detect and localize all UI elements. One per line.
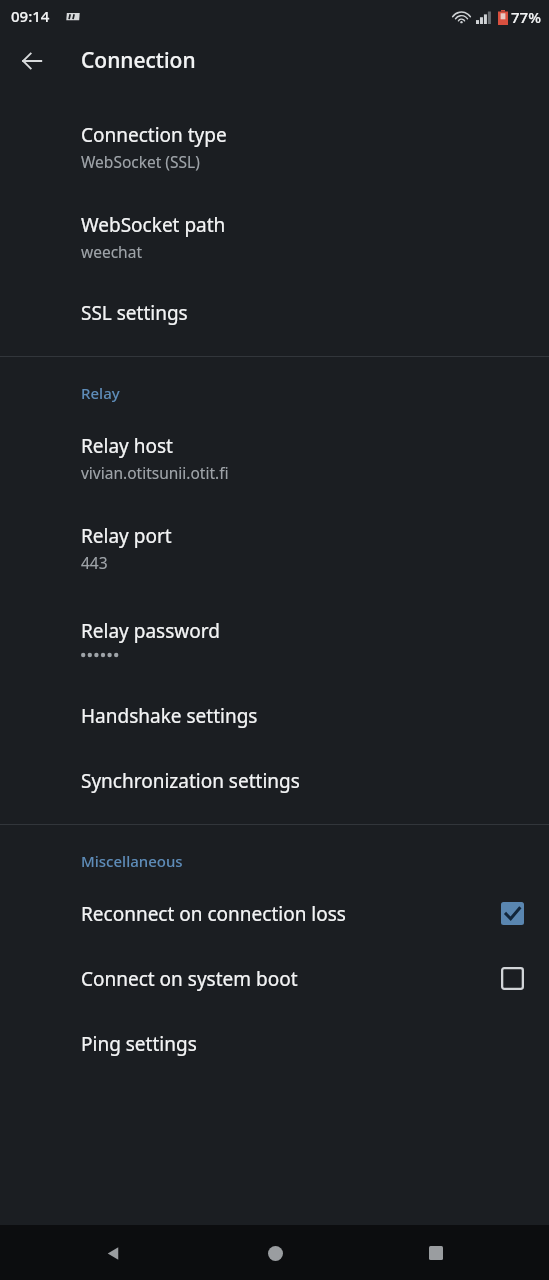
button[interactable]: WebSocket path (0, 192, 549, 282)
staticText: Connection type (81, 122, 227, 148)
staticText: Connect on system boot (81, 966, 298, 992)
staticText: Handshake settings (81, 703, 258, 729)
staticText: Relay host (81, 433, 173, 459)
button[interactable]: Reconnect on connection loss (0, 881, 549, 946)
staticText: 09:14 (11, 6, 50, 26)
staticText: WebSocket (SSL) (81, 151, 200, 172)
button[interactable]: Relay password (0, 593, 549, 683)
button[interactable]: Recent apps (412, 1229, 460, 1277)
button[interactable]: SSL settings (0, 282, 549, 344)
button[interactable]: Connection type (0, 102, 549, 192)
button[interactable]: Ping settings (0, 1011, 549, 1076)
staticText: 443 (81, 552, 108, 573)
staticText: vivian.otitsunii.otit.fi (81, 462, 229, 483)
button[interactable]: Relay port (0, 503, 549, 593)
staticText: Connection (81, 46, 196, 75)
button[interactable]: Synchronization settings (0, 748, 549, 813)
staticText: Relay port (81, 523, 172, 549)
staticText: Relay password (81, 618, 220, 644)
staticText: WebSocket path (81, 212, 226, 238)
staticText: Relay (81, 383, 120, 403)
button[interactable]: Back (89, 1229, 137, 1277)
staticText: Synchronization settings (81, 768, 300, 794)
button[interactable]: Relay host (0, 413, 549, 503)
staticText: weechat (81, 241, 142, 262)
button[interactable]: Home (251, 1229, 299, 1277)
staticText: SSL settings (81, 300, 188, 326)
button[interactable]: Back (8, 37, 56, 85)
button[interactable]: Connect on system boot (0, 946, 549, 1011)
staticText: Miscellaneous (81, 851, 183, 871)
staticText: 77% (511, 7, 541, 27)
button[interactable]: Handshake settings (0, 683, 549, 748)
staticText: Ping settings (81, 1031, 197, 1057)
staticText: Reconnect on connection loss (81, 901, 346, 927)
